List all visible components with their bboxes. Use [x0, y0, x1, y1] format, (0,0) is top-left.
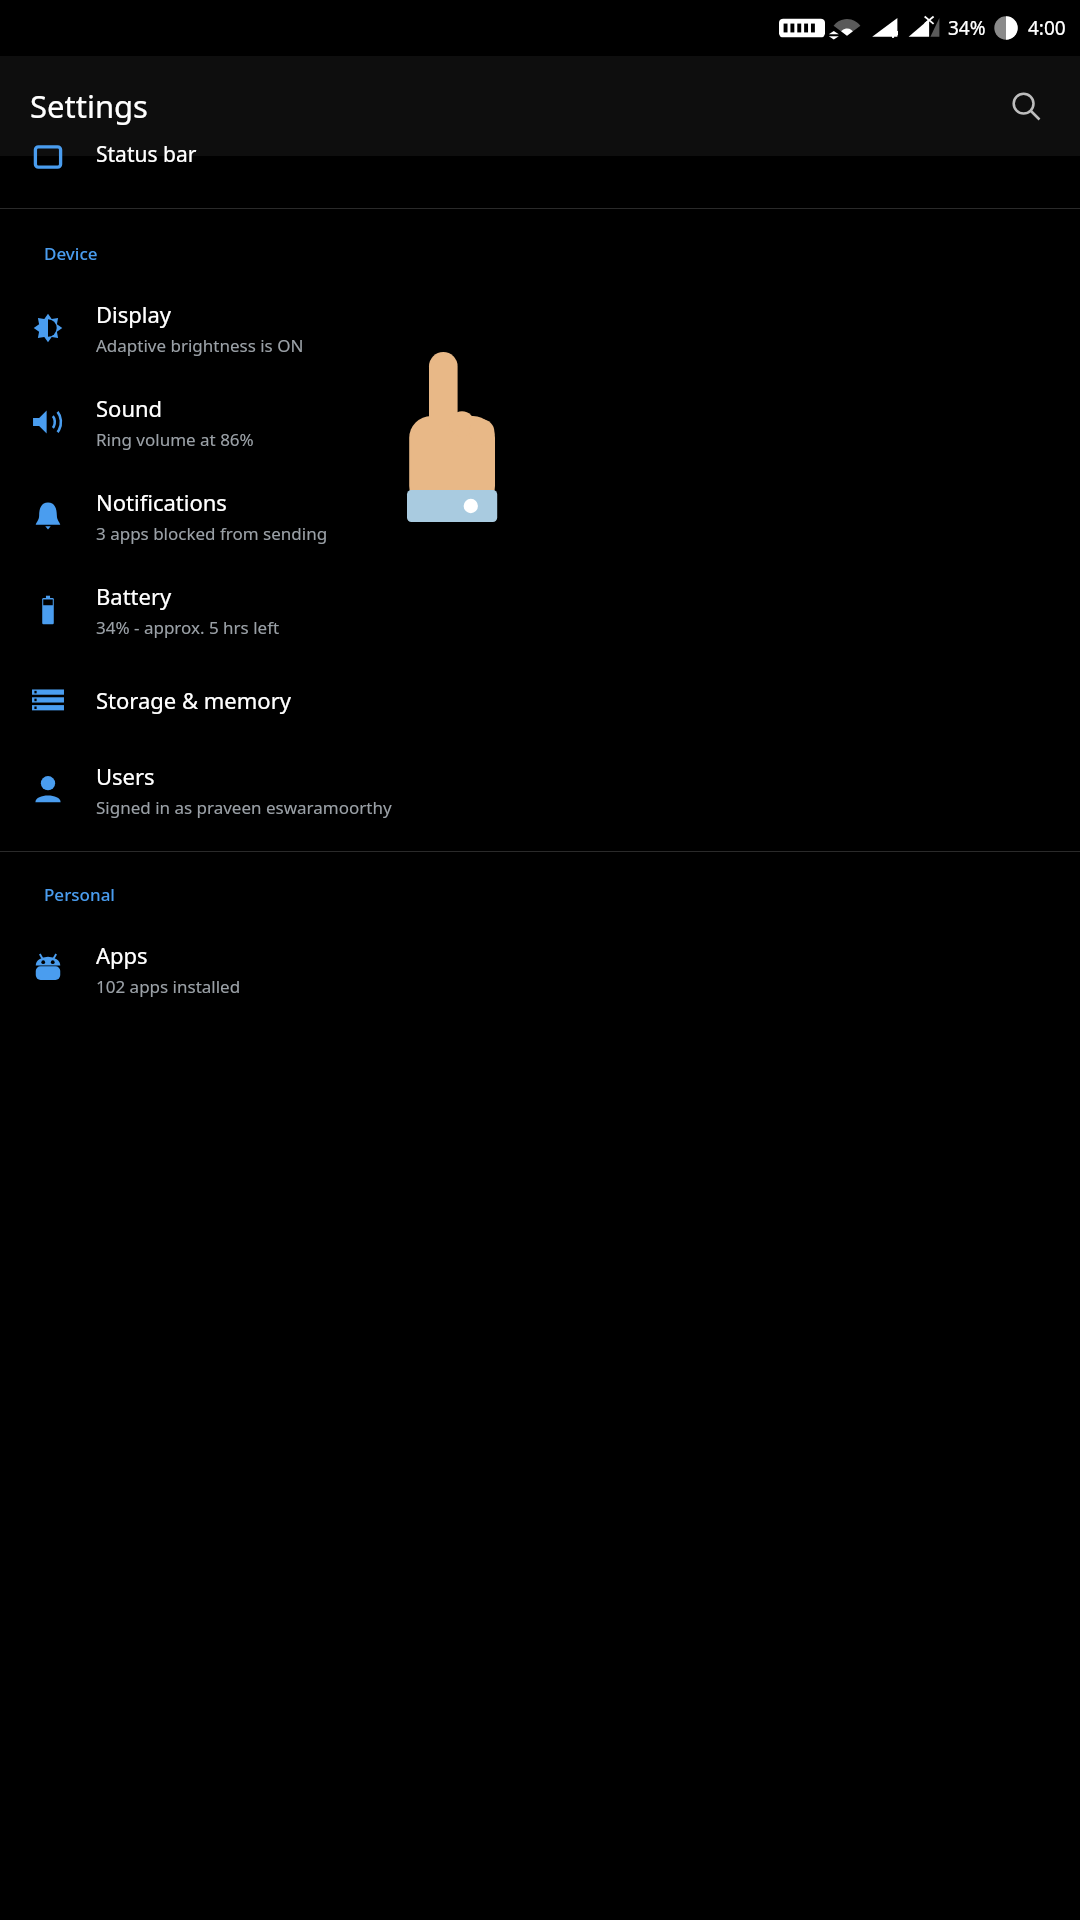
staticText: Apps	[96, 940, 148, 970]
staticText: 4:00	[1028, 15, 1066, 41]
button[interactable]: Status bar	[0, 156, 1080, 208]
staticText: Users	[96, 761, 155, 791]
staticText: Notifications	[96, 487, 227, 517]
button[interactable]: Search	[1002, 82, 1050, 130]
button[interactable]: Battery	[0, 563, 1080, 657]
staticText: 34%	[948, 15, 986, 41]
staticText: Display	[96, 299, 172, 329]
staticText: Personal	[44, 883, 115, 906]
staticText: 34% - approx. 5 hrs left	[96, 616, 280, 639]
staticText: Ring volume at 86%	[96, 428, 254, 451]
button[interactable]: Storage & memory	[0, 657, 1080, 743]
staticText: Storage & memory	[96, 685, 291, 715]
button[interactable]: Display	[0, 281, 1080, 375]
button[interactable]: Users	[0, 743, 1080, 837]
staticText: Status bar	[96, 140, 197, 169]
staticText: Signed in as praveen eswaramoorthy	[96, 796, 392, 819]
button[interactable]: Notifications	[0, 469, 1080, 563]
staticText: Adaptive brightness is ON	[96, 334, 304, 357]
staticText: Settings	[30, 85, 148, 127]
staticText: Battery	[96, 581, 172, 611]
button[interactable]: Apps	[0, 922, 1080, 1016]
staticText: Device	[44, 242, 98, 265]
staticText: 102 apps installed	[96, 975, 241, 998]
staticText: Sound	[96, 393, 163, 423]
staticText: 3 apps blocked from sending	[96, 522, 328, 545]
button[interactable]: Sound	[0, 375, 1080, 469]
